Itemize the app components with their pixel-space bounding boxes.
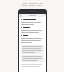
button[interactable]: [21, 45, 44, 54]
button[interactable]: Menu: [19, 14, 46, 17]
button[interactable]: Menu: [18, 9, 47, 72]
button[interactable]: [21, 55, 44, 62]
